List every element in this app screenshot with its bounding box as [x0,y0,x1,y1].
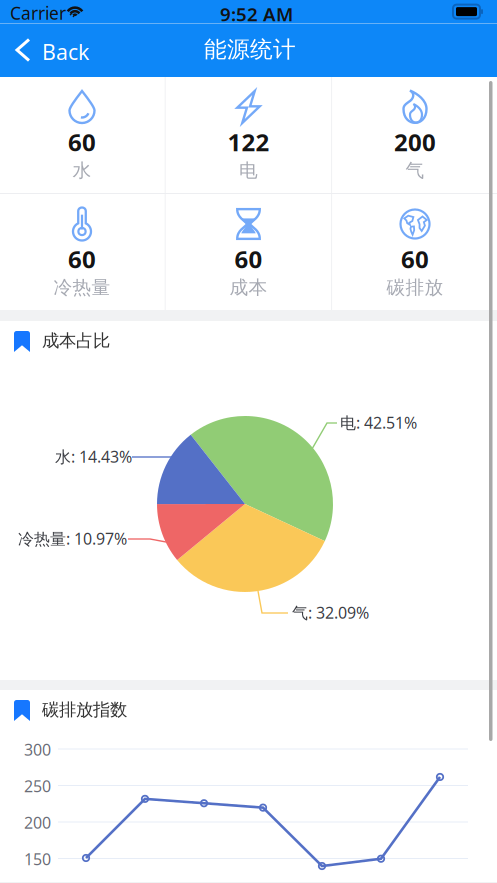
staticText: 300 [24,739,51,760]
staticText: 冷热量 [53,276,110,299]
staticText: 电 [239,159,258,182]
staticText: 60 [68,126,96,158]
staticText: 60 [401,243,429,275]
staticText: 200 [394,126,436,158]
staticText: 冷热量: 10.97% [18,528,127,549]
staticText: 成本占比 [42,330,110,351]
staticText: 250 [24,775,51,797]
staticText: 能源统计 [204,35,296,63]
staticText: 成本 [229,276,267,299]
staticText: 60 [234,243,262,275]
staticText: 122 [227,126,269,158]
staticText: 气 [405,159,424,182]
staticText: 9:52 AM [220,2,293,26]
staticText: Back [42,37,89,66]
staticText: 碳排放 [386,276,443,299]
staticText: 60 [68,243,96,275]
staticText: 气: 32.09% [292,602,369,623]
staticText: 水 [72,159,91,182]
staticText: 200 [24,812,51,833]
staticText: 150 [24,848,51,870]
staticText: Carrier [10,2,66,25]
button[interactable]: Back [0,24,100,77]
staticText: 电: 42.51% [340,412,417,433]
staticText: 水: 14.43% [55,446,132,467]
staticText: 碳排放指数 [42,699,127,720]
